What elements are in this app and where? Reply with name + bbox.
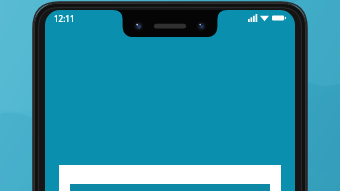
button[interactable] (59, 165, 281, 191)
other: Signal strength (248, 14, 257, 22)
other: Wi-Fi (260, 14, 269, 22)
staticText: 12:11 (54, 13, 75, 24)
other: Battery (272, 14, 286, 22)
